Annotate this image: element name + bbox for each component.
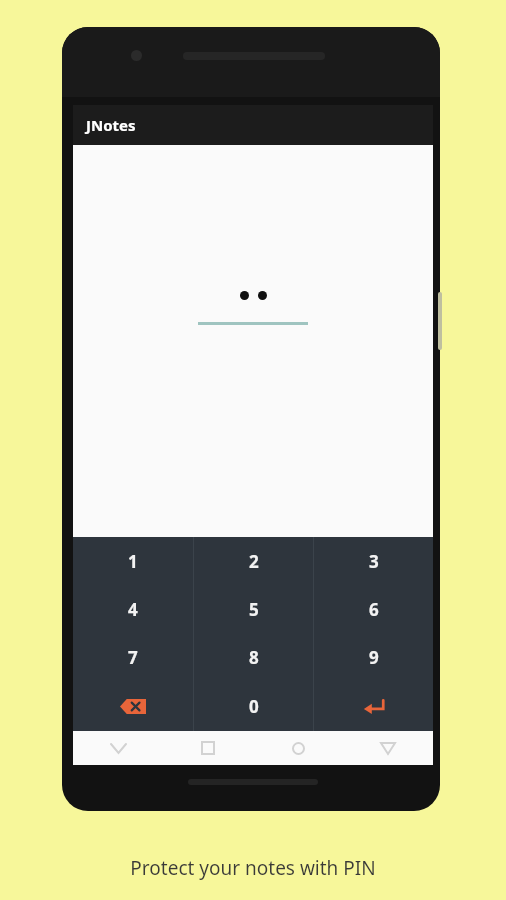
button[interactable]: Backspace [73,682,193,731]
staticText: 6 [369,598,379,621]
staticText: 5 [249,598,259,621]
button[interactable]: 9 [314,633,433,682]
button[interactable]: Back [343,731,433,765]
button[interactable]: Home [253,731,343,765]
button[interactable]: Recents [163,731,253,765]
staticText: 7 [128,646,138,669]
staticText: 4 [128,598,138,621]
button[interactable]: 0 [194,682,313,731]
staticText: 9 [369,646,379,669]
button[interactable]: 3 [314,537,433,585]
button[interactable]: Enter [314,682,433,731]
staticText: 1 [128,550,138,573]
button[interactable]: 8 [194,633,313,682]
staticText: JNotes [86,115,136,135]
staticText: 0 [249,695,259,718]
staticText: 8 [249,646,259,669]
button[interactable]: 7 [73,633,193,682]
button[interactable]: JNotes [73,105,433,145]
button[interactable]: 2 [194,537,313,585]
button[interactable]: 6 [314,585,433,633]
staticText: 3 [369,550,379,573]
button[interactable]: 4 [73,585,193,633]
button[interactable]: 5 [194,585,313,633]
staticText: 2 [249,550,259,573]
staticText: Protect your notes with PIN [130,855,376,881]
button[interactable]: 1 [73,537,193,585]
button[interactable]: Hide keyboard [73,731,163,765]
